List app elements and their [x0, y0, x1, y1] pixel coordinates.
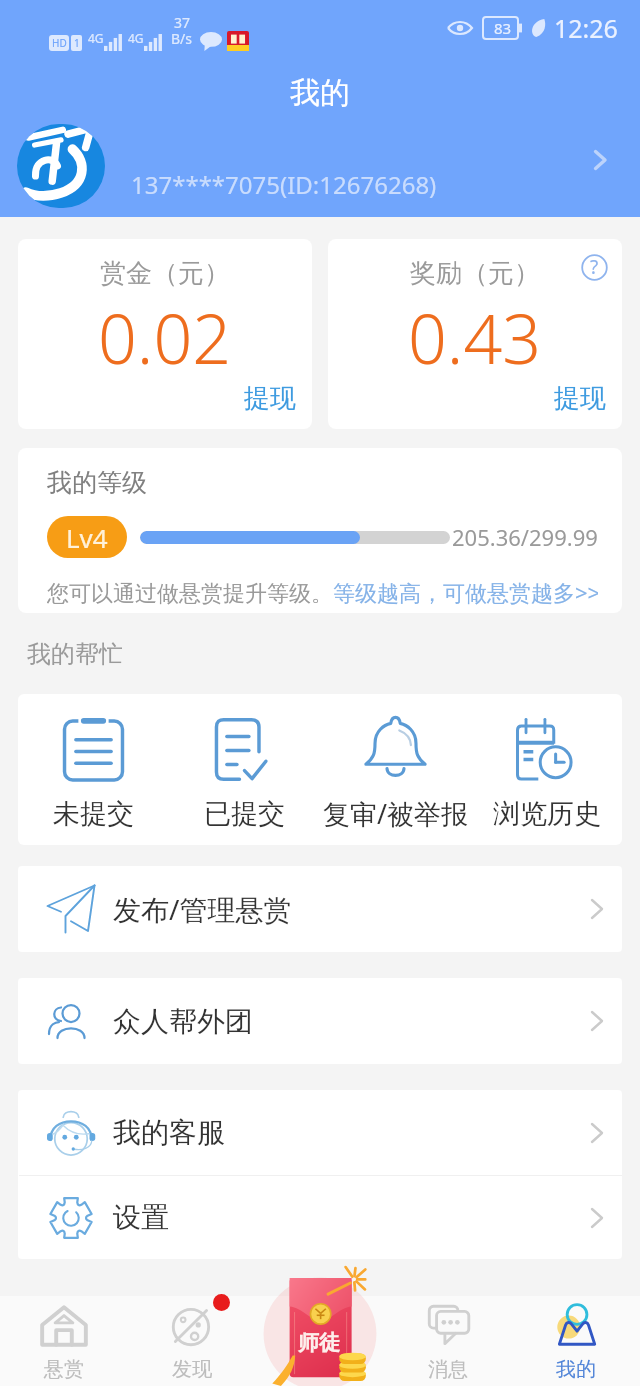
staticText: 浏览历史	[493, 797, 601, 831]
button[interactable]: Account details	[578, 138, 622, 182]
staticText: 4G	[88, 30, 104, 46]
button[interactable]: 众人帮外团	[18, 978, 622, 1064]
button[interactable]: 赏金（元）	[18, 239, 312, 429]
button[interactable]: 奖励（元）	[328, 239, 622, 429]
button[interactable]: 复审/被举报	[320, 694, 471, 845]
button[interactable]: 消息	[384, 1296, 512, 1386]
staticText: Lv4	[66, 520, 108, 555]
staticText: 我的帮忙	[27, 639, 123, 669]
button[interactable]: 已提交	[169, 694, 320, 845]
staticText: 4G	[128, 30, 144, 46]
button[interactable]: 我的客服	[18, 1090, 622, 1175]
staticText: B/s	[171, 29, 193, 48]
staticText: 0.02	[98, 291, 232, 384]
button[interactable]: 师徒	[258, 1265, 382, 1355]
staticText: 我的客服	[113, 1115, 225, 1150]
staticText: 83	[494, 18, 512, 38]
button[interactable]: 未提交	[18, 694, 169, 845]
button[interactable]: 137****7075(ID:12676268)	[0, 124, 640, 208]
staticText: 37	[174, 13, 191, 32]
staticText: 已提交	[204, 797, 285, 831]
staticText: 复审/被举报	[323, 795, 469, 832]
staticText: 发布/管理悬赏	[113, 890, 292, 928]
button[interactable]: 提现	[554, 382, 606, 415]
button[interactable]: 提现	[244, 382, 296, 415]
staticText: ?	[590, 254, 599, 280]
staticText: 发现	[172, 1357, 212, 1382]
button[interactable]: 悬赏	[0, 1296, 128, 1386]
staticText: 悬赏	[44, 1357, 84, 1382]
staticText: HD	[52, 36, 67, 50]
staticText: 众人帮外团	[113, 1004, 253, 1039]
staticText: 设置	[113, 1200, 169, 1235]
button[interactable]: 我的	[512, 1296, 640, 1386]
staticText: 我的等级	[47, 467, 147, 498]
staticText: 赏金（元）	[100, 257, 230, 290]
staticText: 205.36/299.99	[452, 522, 598, 552]
staticText: 我的	[556, 1357, 596, 1382]
button[interactable]: 您可以通过做悬赏提升等级。等级越高，可做悬赏越多>>	[47, 577, 598, 607]
staticText: 137****7075(ID:12676268)	[131, 168, 437, 201]
staticText: 0.43	[408, 291, 542, 384]
staticText: 我的	[290, 74, 350, 112]
staticText: 师徒	[298, 1330, 340, 1356]
staticText: 消息	[428, 1357, 468, 1382]
button[interactable]: Help	[576, 249, 612, 285]
button[interactable]: 设置	[18, 1176, 622, 1259]
button[interactable]: 发布/管理悬赏	[18, 866, 622, 952]
staticText: 奖励（元）	[410, 257, 540, 290]
staticText: 12:26	[554, 11, 618, 45]
button[interactable]: 浏览历史	[471, 694, 622, 845]
staticText: 未提交	[53, 797, 134, 831]
button[interactable]: Lv4	[47, 516, 127, 558]
button[interactable]: 发现	[128, 1296, 256, 1386]
staticText: 1	[74, 36, 80, 50]
